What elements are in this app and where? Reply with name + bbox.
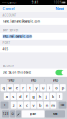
button[interactable]: e bbox=[14, 84, 20, 91]
staticText: SECURITY bbox=[3, 64, 15, 68]
staticText: g bbox=[32, 94, 34, 99]
staticText: p bbox=[62, 85, 64, 90]
staticText: “smtp” bbox=[7, 79, 15, 82]
button[interactable]: g bbox=[30, 93, 36, 100]
staticText: w bbox=[9, 85, 12, 90]
staticText: space bbox=[30, 112, 37, 116]
button[interactable]: o bbox=[53, 84, 59, 91]
staticText: t bbox=[29, 85, 30, 90]
button[interactable]: r bbox=[20, 84, 26, 91]
button[interactable]: “smtp” bbox=[1, 77, 22, 83]
button[interactable]: Shift bbox=[0, 101, 8, 109]
staticText: u bbox=[42, 85, 44, 90]
button[interactable]: k bbox=[50, 93, 56, 100]
staticText: 9:41 bbox=[32, 1, 39, 4]
staticText: x bbox=[19, 102, 21, 108]
staticText: PORT bbox=[3, 41, 10, 45]
button[interactable]: w bbox=[7, 84, 13, 91]
button[interactable]: Smtp bbox=[45, 77, 66, 83]
button[interactable]: Next bbox=[45, 110, 65, 117]
button[interactable]: p bbox=[60, 84, 66, 91]
button[interactable]: s bbox=[10, 93, 16, 100]
staticText: ••••• Carrier bbox=[2, 1, 17, 4]
staticText: j bbox=[46, 94, 47, 99]
button[interactable]: Use SSL on this device bbox=[0, 69, 67, 77]
staticText: ☺ bbox=[11, 112, 14, 115]
button[interactable]: y bbox=[33, 84, 39, 91]
staticText: name.lastname@example.com bbox=[3, 20, 40, 23]
staticText: d bbox=[19, 94, 21, 99]
staticText: ⌫ bbox=[61, 104, 65, 107]
staticText: 465 bbox=[3, 47, 9, 51]
button[interactable]: Delete bbox=[59, 101, 66, 109]
button[interactable]: b bbox=[37, 101, 43, 109]
staticText: c bbox=[26, 102, 28, 108]
staticText: i bbox=[49, 85, 50, 90]
staticText: l bbox=[59, 94, 60, 99]
button[interactable]: smtp bbox=[23, 77, 44, 83]
staticText: s bbox=[12, 94, 14, 99]
button[interactable]: d bbox=[17, 93, 23, 100]
staticText: o bbox=[55, 85, 57, 90]
button[interactable]: h bbox=[37, 93, 43, 100]
staticText: SMTP SERVER bbox=[3, 28, 19, 32]
staticText: ⇧ bbox=[3, 104, 5, 107]
button[interactable]: Cancel bbox=[3, 5, 15, 12]
button[interactable]: n bbox=[44, 101, 50, 109]
staticText: 123 bbox=[3, 112, 9, 116]
button[interactable]: z bbox=[11, 101, 17, 109]
button[interactable]: l bbox=[56, 93, 62, 100]
staticText: y bbox=[35, 85, 37, 90]
staticText: k bbox=[52, 94, 54, 99]
staticText: v bbox=[32, 102, 34, 108]
staticText: m bbox=[51, 102, 55, 108]
staticText: r bbox=[22, 85, 24, 90]
staticText: Cancel bbox=[3, 6, 15, 11]
button[interactable]: c bbox=[24, 101, 30, 109]
staticText: b bbox=[39, 102, 41, 108]
staticText: e bbox=[16, 85, 18, 90]
button[interactable]: space bbox=[22, 110, 44, 117]
staticText: 100% bbox=[54, 1, 62, 4]
staticText: f bbox=[26, 94, 27, 99]
staticText: z bbox=[13, 102, 15, 108]
button[interactable]: Dictation bbox=[16, 110, 21, 117]
button[interactable]: Emoji bbox=[10, 110, 15, 117]
button[interactable]: j bbox=[43, 93, 49, 100]
staticText: h bbox=[39, 94, 41, 99]
staticText: Smtp bbox=[52, 79, 58, 82]
staticText: ACCOUNT bbox=[3, 14, 16, 17]
button[interactable]: v bbox=[30, 101, 36, 109]
button[interactable]: 123 bbox=[2, 110, 9, 117]
button[interactable]: f bbox=[24, 93, 29, 100]
button[interactable]: m bbox=[50, 101, 56, 109]
button[interactable]: u bbox=[40, 84, 46, 91]
button[interactable]: x bbox=[17, 101, 23, 109]
staticText: smtp.mail.example.com bbox=[3, 35, 32, 38]
staticText: Next bbox=[55, 6, 64, 11]
button[interactable]: q bbox=[0, 84, 6, 91]
staticText: Next bbox=[52, 112, 57, 116]
button[interactable]: Next bbox=[55, 5, 64, 12]
staticText: n bbox=[46, 102, 48, 108]
button[interactable]: t bbox=[27, 84, 33, 91]
staticText: smtp bbox=[30, 79, 36, 82]
staticText: a bbox=[6, 94, 8, 99]
staticText: Use SSL on this device bbox=[3, 71, 32, 74]
button[interactable]: a bbox=[4, 93, 10, 100]
staticText: q bbox=[2, 85, 4, 90]
staticText: 🎤 bbox=[17, 112, 20, 115]
button[interactable]: i bbox=[47, 84, 52, 91]
